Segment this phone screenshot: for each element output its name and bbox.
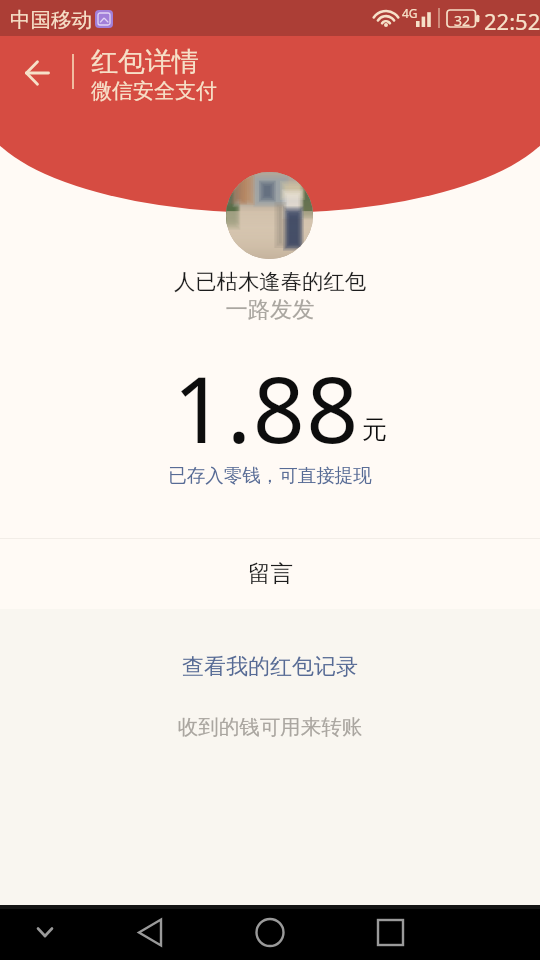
staticText: 1.88 xyxy=(173,346,360,470)
staticText: 收到的钱可用来转账 xyxy=(0,714,540,740)
staticText: 留言 xyxy=(248,559,293,587)
staticText: 红包详情 xyxy=(91,45,199,79)
staticText: 元 xyxy=(362,414,387,445)
staticText: 32 xyxy=(454,11,471,30)
button[interactable]: 查看我的红包记录 xyxy=(0,645,540,689)
staticText: 一路发发 xyxy=(0,296,540,324)
button[interactable]: 已存入零钱，可直接提现 xyxy=(0,445,540,485)
button[interactable]: Back xyxy=(6,42,68,104)
button[interactable]: Hide keyboard xyxy=(0,905,90,960)
staticText: 查看我的红包记录 xyxy=(182,653,358,681)
staticText: 已存入零钱，可直接提现 xyxy=(168,464,372,487)
staticText: 4G xyxy=(402,5,418,21)
button[interactable]: Recent apps xyxy=(330,905,450,960)
button[interactable]: Home xyxy=(210,905,330,960)
staticText: 人已枯木逢春的红包 xyxy=(0,268,540,295)
button[interactable]: 留言 xyxy=(0,539,540,609)
staticText: 22:52 xyxy=(484,6,540,36)
staticText: 中国移动 xyxy=(10,7,92,33)
staticText: 微信安全支付 xyxy=(91,78,217,104)
button[interactable]: Back xyxy=(90,905,210,960)
